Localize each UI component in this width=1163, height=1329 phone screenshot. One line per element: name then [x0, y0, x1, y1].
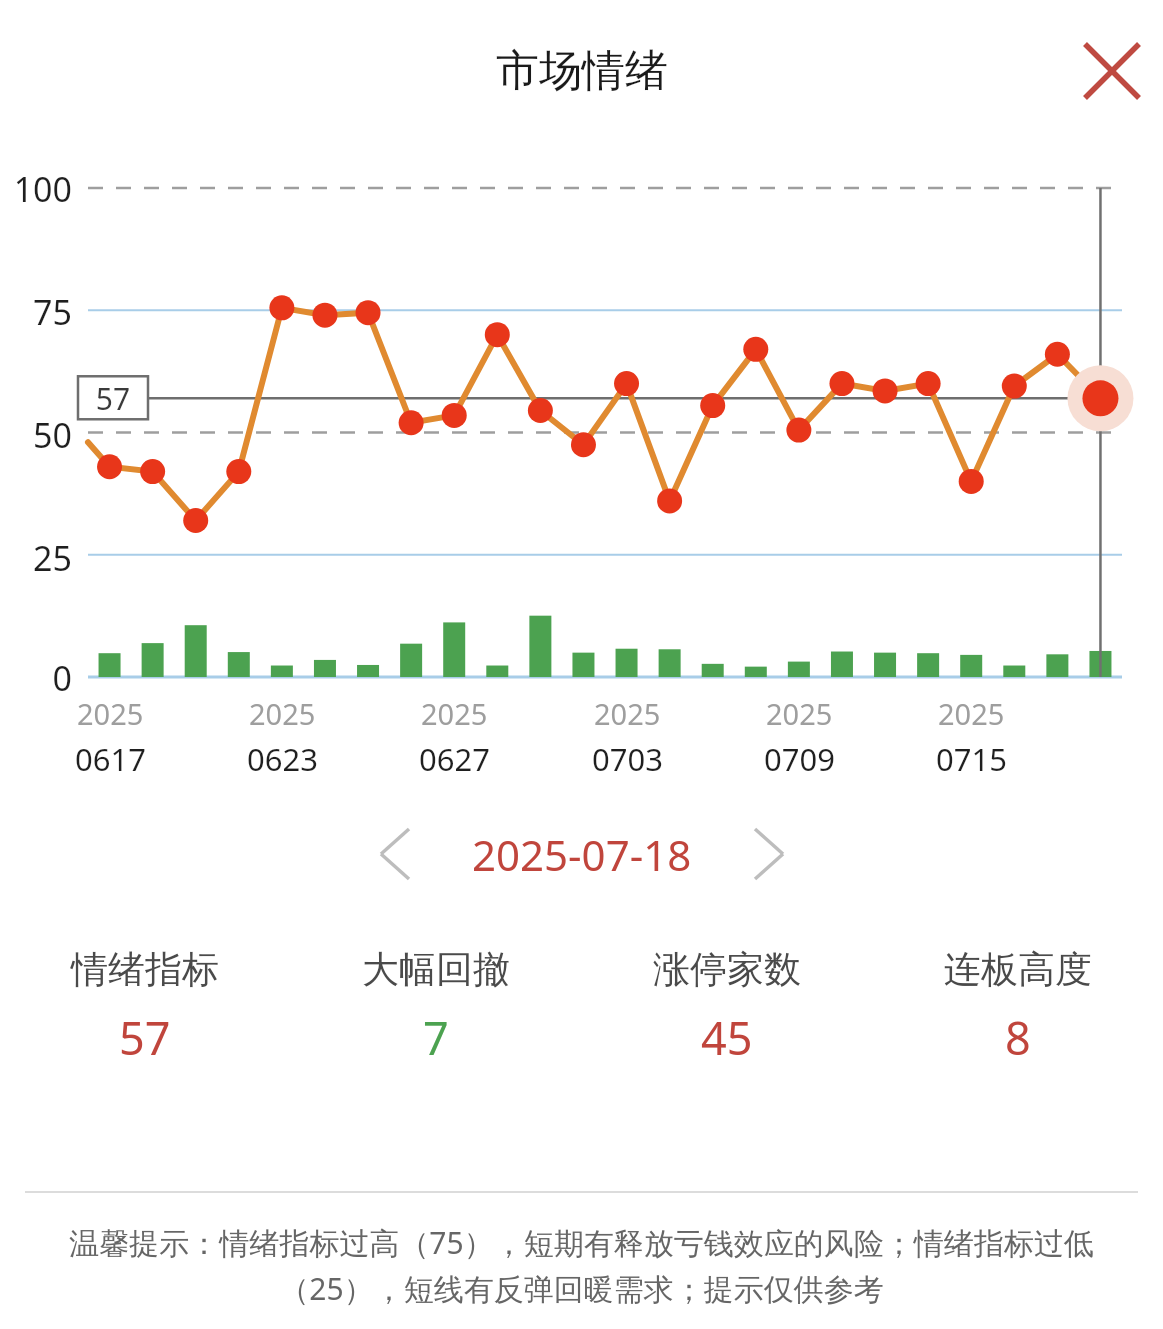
button[interactable]: 上一日	[353, 812, 437, 896]
staticText: 0627	[419, 738, 490, 780]
staticText: 0703	[592, 738, 663, 780]
button[interactable]: 情绪指标	[0, 946, 290, 1068]
staticText: 2025	[421, 694, 488, 733]
staticText: 57	[78, 378, 148, 419]
staticText: 温馨提示：情绪指标过高（75），短期有释放亏钱效应的风险；情绪指标过低（25），…	[50, 1222, 1113, 1309]
staticText: 2025	[766, 694, 833, 733]
staticText: 7	[423, 1007, 449, 1068]
button[interactable]: 2025-07-18	[437, 826, 727, 883]
button[interactable]: 涨停家数	[581, 946, 872, 1068]
staticText: 57	[119, 1007, 171, 1068]
staticText: 50	[0, 412, 72, 458]
staticText: 0623	[247, 738, 318, 780]
staticText: 100	[0, 166, 72, 212]
staticText: 0	[0, 655, 72, 701]
staticText: 2025	[938, 694, 1005, 733]
staticText: 2025	[594, 694, 661, 733]
staticText: 0617	[75, 738, 146, 780]
staticText: 45	[701, 1007, 753, 1068]
staticText: 0715	[936, 738, 1007, 780]
staticText: 情绪指标	[71, 946, 219, 993]
staticText: 涨停家数	[653, 946, 801, 993]
staticText: 2025	[77, 694, 144, 733]
staticText: 大幅回撤	[362, 946, 510, 993]
staticText: 8	[1005, 1007, 1031, 1068]
button[interactable]: 大幅回撤	[290, 946, 581, 1068]
staticText: 75	[0, 289, 72, 335]
staticText: 25	[0, 535, 72, 581]
button[interactable]: 下一日	[727, 812, 811, 896]
staticText: 市场情绪	[496, 44, 668, 98]
staticText: 0709	[764, 738, 835, 780]
staticText: 2025	[249, 694, 316, 733]
button[interactable]: 连板高度	[872, 946, 1163, 1068]
staticText: 连板高度	[944, 946, 1092, 993]
staticText: 2025-07-18	[472, 826, 692, 883]
button[interactable]: 关闭	[1074, 33, 1150, 109]
